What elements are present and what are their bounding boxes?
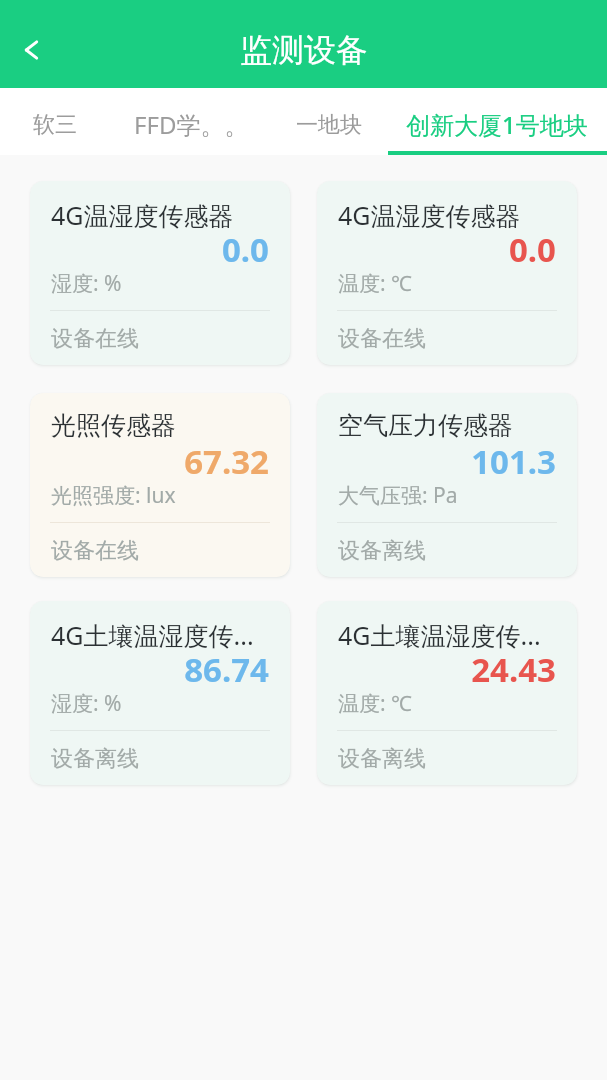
staticText: 光照强度: lux xyxy=(51,481,176,510)
staticText: 设备离线 xyxy=(51,745,139,773)
staticText: 67.32 xyxy=(30,439,269,484)
staticText: 24.43 xyxy=(317,647,556,692)
button[interactable]: 4G温湿度传感器 xyxy=(30,181,290,365)
staticText: 设备离线 xyxy=(338,537,426,565)
staticText: 4G土壤温湿度传... xyxy=(51,618,254,652)
staticText: 设备在线 xyxy=(51,325,139,353)
button[interactable]: 空气压力传感器 xyxy=(317,393,577,577)
staticText: 光照传感器 xyxy=(51,410,176,441)
staticText: 温度: ℃ xyxy=(338,689,412,718)
staticText: 86.74 xyxy=(30,647,269,692)
staticText: 软三 xyxy=(33,111,77,139)
button[interactable]: 4G温湿度传感器 xyxy=(317,181,577,365)
staticText: 监测设备 xyxy=(240,30,368,70)
staticText: 一地块 xyxy=(296,111,362,139)
staticText: 创新大厦1号地块 xyxy=(406,108,588,141)
staticText: 设备在线 xyxy=(51,537,139,565)
staticText: FFD学。。 xyxy=(134,108,249,141)
staticText: 设备在线 xyxy=(338,325,426,353)
staticText: 0.0 xyxy=(317,227,556,272)
button[interactable]: 一地块 xyxy=(270,88,387,155)
staticText: 101.3 xyxy=(317,439,556,484)
button[interactable]: 4G土壤温湿度传... xyxy=(317,601,577,785)
staticText: 4G温湿度传感器 xyxy=(51,198,234,232)
button[interactable]: 4G土壤温湿度传... xyxy=(30,601,290,785)
staticText: 温度: ℃ xyxy=(338,269,412,298)
button[interactable]: FFD学。。 xyxy=(112,88,270,155)
staticText: 大气压强: Pa xyxy=(338,481,458,510)
staticText: 空气压力传感器 xyxy=(338,410,513,441)
staticText: 4G温湿度传感器 xyxy=(338,198,521,232)
staticText: 湿度: % xyxy=(51,689,122,718)
button[interactable]: 光照传感器 xyxy=(30,393,290,577)
staticText: 湿度: % xyxy=(51,269,122,298)
button[interactable]: Back xyxy=(3,22,59,78)
staticText: 设备离线 xyxy=(338,745,426,773)
staticText: 0.0 xyxy=(30,227,269,272)
button[interactable]: 创新大厦1号地块 xyxy=(387,88,607,155)
button[interactable]: 软三 xyxy=(0,88,112,155)
staticText: 4G土壤温湿度传... xyxy=(338,618,541,652)
